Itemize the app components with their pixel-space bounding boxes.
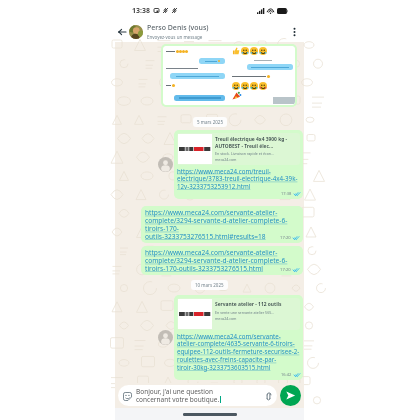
button[interactable]: Emoji [122, 391, 132, 401]
staticText: 17:38 [281, 191, 292, 196]
staticText: En stock. Livraison rapide et écon... [215, 151, 274, 156]
staticText: 10 mars 2025 [195, 282, 224, 288]
staticText: https://www.meca24.com/servante-atelier-… [145, 248, 299, 273]
staticText: Perso Denis (vous) [147, 23, 209, 33]
button[interactable]: Attach [263, 391, 273, 401]
staticText: Treuil électrique 4x4 3900 kg - AUTOBEST… [215, 136, 299, 149]
staticText: https://www.meca24.com/treuil-electrique… [177, 167, 300, 191]
staticText: 5 mars 2025 [197, 119, 223, 125]
button[interactable]: Back [115, 25, 128, 38]
button[interactable]: More options [287, 25, 301, 39]
staticText: meca24.com [215, 316, 237, 321]
staticText: 17:20 [280, 235, 291, 241]
staticText: Bonjour, j'ai une question concernant vo… [136, 387, 220, 404]
staticText: En vente une servante atelier 565... [215, 310, 275, 315]
staticText: https://www.meca24.com/servante-atelier-… [145, 208, 299, 241]
staticText: 16:42 [281, 372, 292, 377]
button[interactable]: Emoji [118, 385, 277, 406]
staticText: meca24.com [215, 157, 237, 162]
staticText: https://www.meca24.com/servante-atelier-… [177, 332, 300, 372]
button[interactable]: Send [280, 385, 301, 406]
staticText: Servante atelier - 112 outils [215, 301, 282, 308]
staticText: 13:38 [132, 6, 150, 16]
staticText: 17:20 [280, 267, 291, 273]
staticText: Envoyez-vous un message [147, 34, 203, 40]
